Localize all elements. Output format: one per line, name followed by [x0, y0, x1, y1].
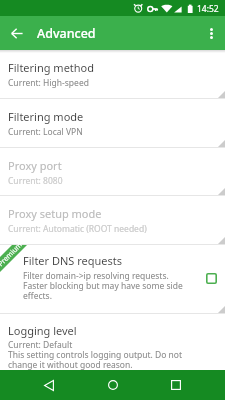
button[interactable]: Filtering mode [0, 99, 225, 148]
staticText: Filtering mode [8, 109, 84, 124]
staticText: Current: Local VPN [8, 126, 83, 138]
button[interactable]: Filter DNS requests [0, 245, 225, 314]
staticText: Current: Default This setting controls l… [8, 339, 200, 370]
button[interactable]: Back [34, 370, 64, 400]
staticText: Filter domain->ip resolving requests. Fa… [23, 270, 194, 301]
staticText: Advanced [37, 25, 96, 42]
staticText: 14:52 [197, 3, 219, 15]
staticText: Proxy setup mode [8, 206, 102, 221]
button[interactable]: Home [98, 370, 128, 400]
staticText: Filtering method [8, 60, 95, 75]
staticText: Current: Automatic (ROOT needed) [8, 223, 147, 235]
button[interactable]: Proxy port [0, 148, 225, 196]
button[interactable]: More options [194, 16, 225, 50]
staticText: Proxy port [8, 158, 62, 173]
staticText: Filter DNS requests [23, 253, 123, 268]
staticText: Premium [0, 240, 25, 269]
button[interactable]: Navigate up [0, 16, 34, 50]
button[interactable]: Recent apps [161, 370, 191, 400]
staticText: Logging level [8, 323, 77, 338]
button[interactable]: Proxy setup mode [0, 196, 225, 245]
button[interactable]: Logging level [0, 314, 225, 370]
button[interactable]: Filter DNS requests [206, 273, 217, 284]
button[interactable]: Filtering method [0, 50, 225, 99]
staticText: Current: 8080 [8, 175, 63, 187]
staticText: Current: High-speed [8, 77, 89, 89]
